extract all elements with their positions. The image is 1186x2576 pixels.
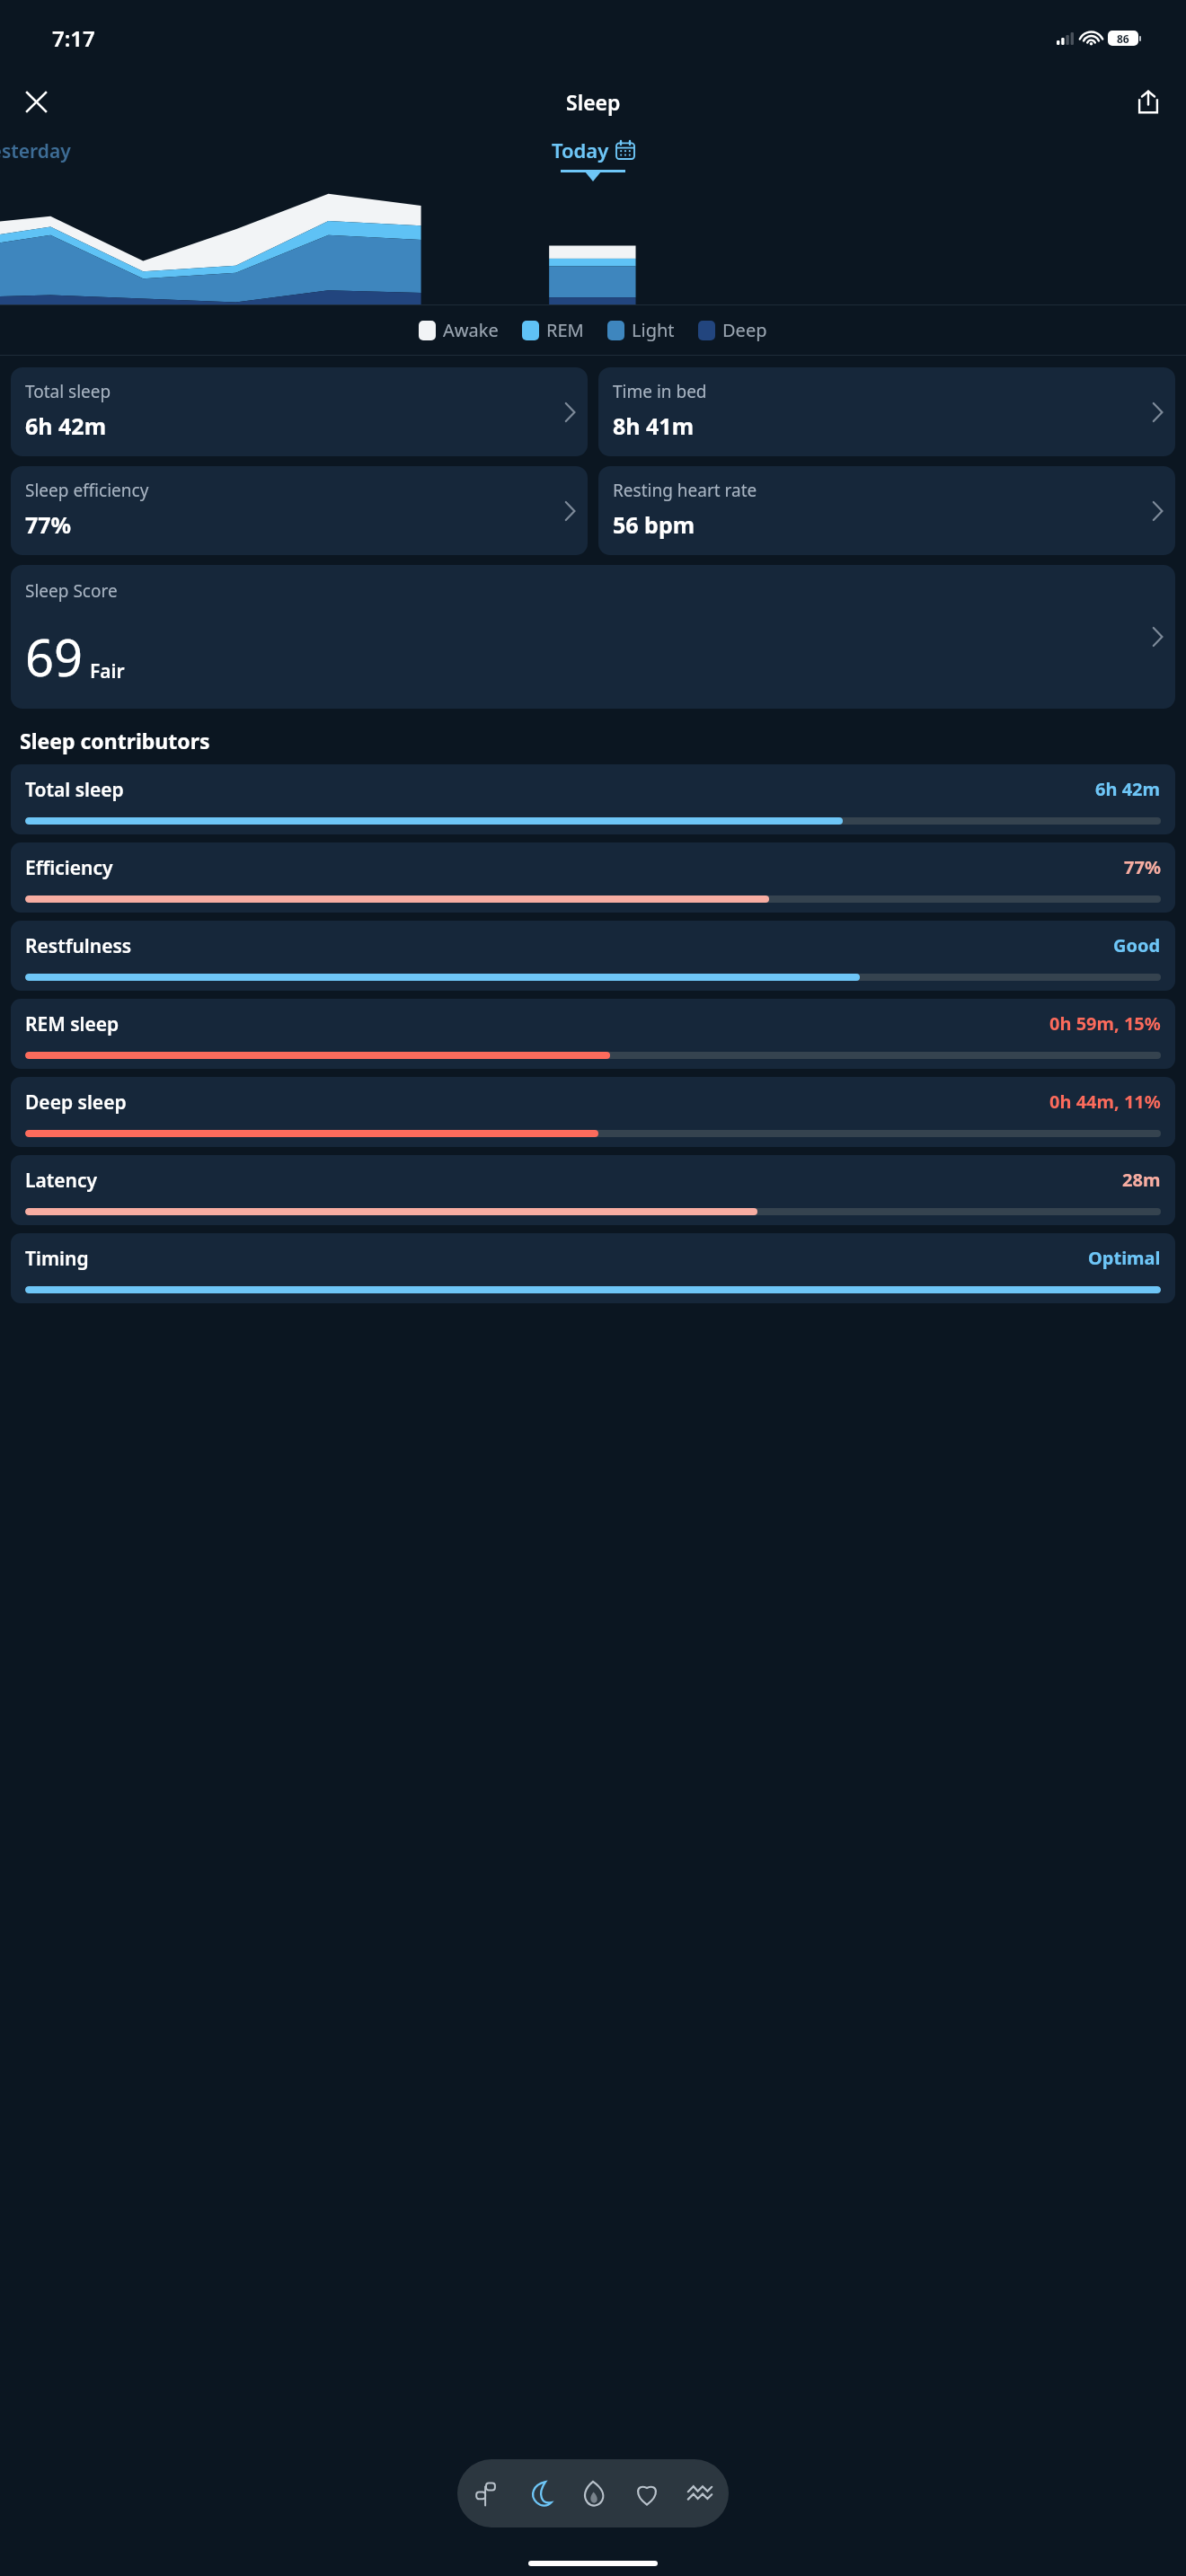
staticText: Optimal [1088, 1246, 1161, 1270]
staticText: 0h 44m, 11% [1049, 1090, 1161, 1114]
button[interactable]: Deep sleep [11, 1077, 1175, 1147]
button[interactable]: Time in bed [598, 367, 1175, 456]
staticText: Deep [722, 318, 767, 342]
button[interactable]: Latency [11, 1155, 1175, 1225]
button[interactable]: Restfulness [11, 921, 1175, 991]
staticText: 69 [25, 622, 84, 691]
staticText: Today [552, 137, 609, 163]
button[interactable]: Close [14, 80, 58, 123]
button[interactable]: Today [552, 128, 634, 180]
button[interactable]: Activity [461, 2468, 511, 2519]
button[interactable]: Resting heart rate [598, 466, 1175, 555]
staticText: 8h 41m [613, 410, 695, 441]
staticText: 86 [1117, 31, 1129, 46]
button[interactable]: Efficiency [11, 842, 1175, 913]
button[interactable]: Sleep efficiency [11, 466, 588, 555]
staticText: Sleep efficiency [25, 479, 149, 502]
staticText: 6h 42m [1095, 777, 1161, 801]
staticText: 77% [25, 509, 72, 540]
button[interactable]: Timing [11, 1233, 1175, 1303]
staticText: Light [632, 318, 675, 342]
staticText: REM [546, 318, 584, 342]
staticText: Efficiency [25, 855, 113, 881]
button[interactable]: Total sleep [11, 367, 588, 456]
staticText: 6h 42m [25, 410, 107, 441]
button[interactable]: Total sleep [11, 764, 1175, 834]
staticText: 56 bpm [613, 509, 695, 540]
staticText: REM sleep [25, 1011, 119, 1037]
button[interactable]: Share [1127, 80, 1170, 123]
staticText: Restfulness [25, 933, 132, 959]
button[interactable]: Heart [622, 2468, 672, 2519]
staticText: Total sleep [25, 777, 124, 803]
staticText: 0h 59m, 15% [1049, 1011, 1161, 1036]
staticText: 28m [1122, 1168, 1161, 1192]
staticText: Sleep [566, 88, 621, 116]
staticText: Sleep Score [25, 579, 118, 603]
button[interactable]: Sleep [514, 2468, 564, 2519]
staticText: Awake [443, 318, 499, 342]
staticText: Fair [90, 658, 125, 684]
staticText: Sleep contributors [20, 727, 210, 754]
button[interactable]: Sleep Score [11, 565, 1175, 709]
staticText: Resting heart rate [613, 479, 757, 502]
button[interactable]: Yesterday [0, 138, 71, 164]
button[interactable]: REM sleep [11, 999, 1175, 1069]
staticText: Time in bed [613, 380, 707, 403]
staticText: Good [1113, 933, 1161, 957]
staticText: Total sleep [25, 380, 111, 403]
staticText: Deep sleep [25, 1090, 127, 1116]
staticText: 7:17 [52, 23, 95, 53]
staticText: Latency [25, 1168, 98, 1194]
staticText: Timing [25, 1246, 89, 1272]
button[interactable]: Calories [568, 2468, 618, 2519]
button[interactable]: Trends [675, 2468, 725, 2519]
staticText: 77% [1124, 855, 1161, 879]
